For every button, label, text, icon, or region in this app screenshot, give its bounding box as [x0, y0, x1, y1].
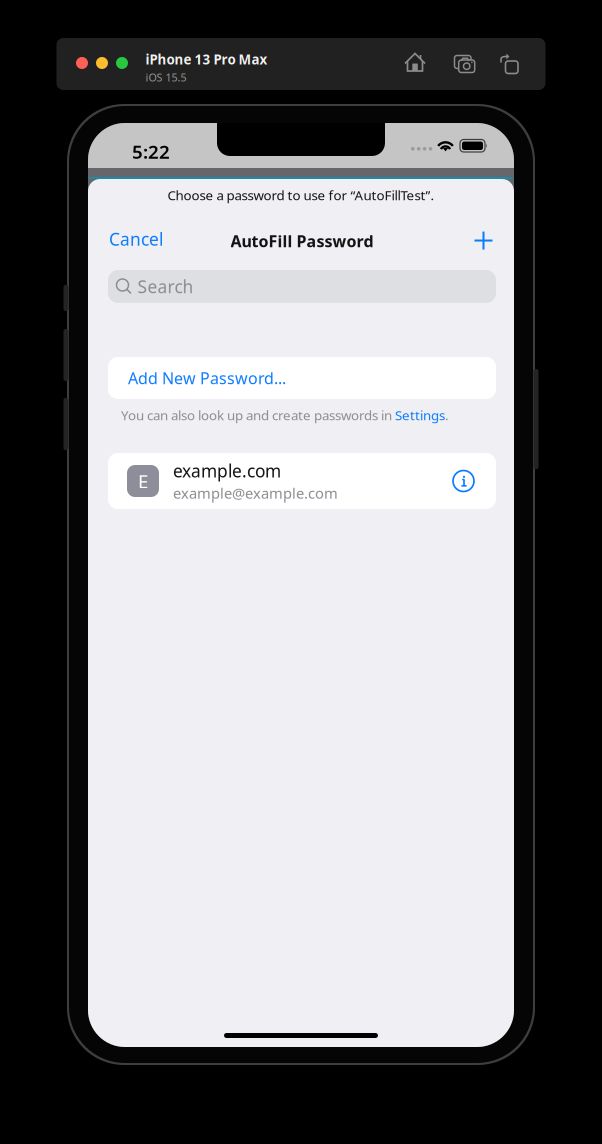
staticText: example.com	[173, 459, 281, 482]
button[interactable]: Add password	[465, 222, 501, 258]
staticText: example@example.com	[173, 483, 338, 503]
button[interactable]: Screenshot	[449, 49, 483, 79]
staticText: Cancel	[109, 227, 163, 250]
staticText: E	[138, 469, 148, 493]
button[interactable]: Home	[400, 48, 434, 78]
staticText: .	[445, 406, 449, 424]
button[interactable]: Search	[108, 270, 496, 303]
staticText: Add New Password...	[128, 367, 286, 389]
staticText: iPhone 13 Pro Max	[145, 50, 267, 68]
button[interactable]: Close window	[76, 57, 88, 69]
staticText: Search	[137, 275, 193, 298]
button[interactable]: Settings	[395, 406, 445, 424]
staticText: You can also look up and create password…	[121, 406, 395, 424]
staticText: Choose a password to use for “AutoFillTe…	[167, 186, 434, 204]
button[interactable]: Minimise window	[96, 57, 108, 69]
button[interactable]: Cancel	[109, 221, 173, 257]
staticText: Settings	[395, 406, 445, 424]
staticText: iOS 15.5	[145, 70, 186, 84]
button[interactable]: Add New Password...	[108, 357, 496, 399]
button[interactable]: E	[108, 453, 496, 509]
staticText: 5:22	[132, 139, 170, 164]
button[interactable]: Share	[494, 49, 528, 79]
button[interactable]: Zoom window	[116, 57, 128, 69]
staticText: AutoFill Password	[230, 230, 373, 252]
